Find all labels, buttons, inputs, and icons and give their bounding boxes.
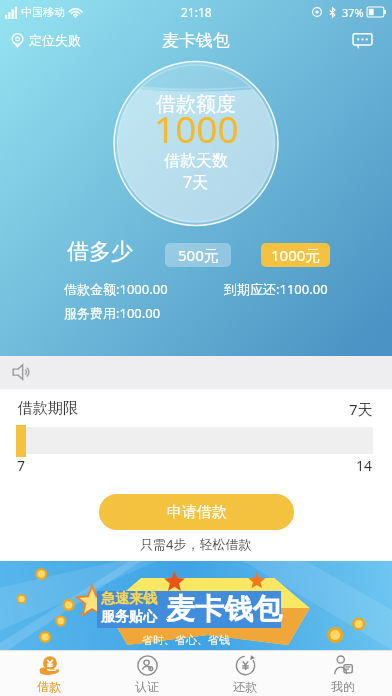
staticText: 借款期限 (18, 399, 78, 418)
staticText: 借款天数 (164, 151, 228, 171)
button[interactable]: 我的 (294, 651, 392, 696)
staticText: 1000 (154, 103, 239, 153)
button[interactable]: 申请借款 (99, 494, 294, 530)
button[interactable]: 定位失败 (10, 32, 81, 48)
button[interactable]: 借款 (0, 651, 98, 696)
staticText: 只需4步，轻松借款 (140, 535, 252, 553)
staticText: 到期应还:1100.00 (224, 280, 328, 298)
staticText: 7 (17, 456, 26, 475)
button[interactable]: 500元 (165, 243, 231, 267)
staticText: 认证 (135, 679, 159, 694)
button[interactable]: Announcement (12, 363, 31, 382)
button[interactable]: 1000元 (261, 243, 330, 267)
staticText: 7天 (183, 171, 209, 193)
staticText: 服务费用:100.00 (64, 304, 161, 322)
staticText: 37% (342, 5, 364, 20)
staticText: 借款 (37, 679, 61, 694)
staticText: 21:18 (181, 4, 212, 20)
staticText: 还款 (233, 679, 257, 694)
staticText: 定位失败 (29, 32, 81, 48)
staticText: 14 (356, 456, 373, 475)
staticText: 急速来钱 (101, 590, 157, 608)
staticText: 借款金额:1000.00 (64, 280, 168, 298)
staticText: 1000元 (271, 245, 321, 265)
staticText: 500元 (178, 245, 219, 265)
staticText: 我的 (331, 679, 355, 694)
staticText: 省时、省心、省钱 (142, 633, 230, 647)
button[interactable]: 认证 (98, 651, 196, 696)
staticText: 7天 (349, 399, 373, 419)
staticText: 借多少 (67, 238, 133, 266)
staticText: 申请借款 (167, 503, 227, 522)
button[interactable]: 还款 (196, 651, 294, 696)
staticText: 麦卡钱包 (166, 591, 282, 628)
button[interactable]: Promotion banner (0, 561, 392, 650)
staticText: 麦卡钱包 (162, 30, 230, 51)
button[interactable]: Messages (352, 30, 373, 51)
staticText: 中国移动 (21, 5, 65, 19)
staticText: 借款额度 (156, 92, 236, 117)
staticText: 服务贴心 (101, 608, 157, 626)
